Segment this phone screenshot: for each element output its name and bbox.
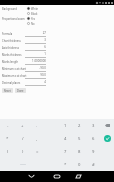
staticText: ,: [36, 136, 38, 142]
staticText: Background: [2, 7, 27, 11]
button[interactable]: =: [30, 145, 44, 158]
staticText: 7: [64, 149, 67, 155]
button[interactable]: Minimum x at chart: [2, 65, 114, 72]
button[interactable]: 1: [58, 119, 72, 132]
button[interactable]: 6: [86, 132, 100, 145]
staticText: Done: [17, 89, 24, 93]
staticText: 0: [78, 162, 81, 168]
staticText: 4: [25, 80, 46, 84]
button[interactable]: Maximum x at chart: [2, 72, 114, 79]
staticText: *: [6, 136, 9, 142]
button[interactable]: Yes: [27, 16, 36, 21]
staticText: Chart thickness: [2, 39, 25, 43]
staticText: 3: [25, 38, 46, 42]
staticText: (: [7, 149, 9, 155]
button[interactable]: 9: [86, 145, 100, 158]
button[interactable]: White: [27, 6, 39, 11]
button[interactable]: 7: [58, 145, 72, 158]
button[interactable]: 0: [72, 158, 86, 171]
staticText: 9: [92, 149, 95, 155]
staticText: Maximum x at chart: [2, 74, 25, 78]
staticText: 2: [78, 123, 81, 129]
staticText: White: [31, 7, 39, 11]
button[interactable]: 3: [86, 119, 100, 132]
staticText: 4: [64, 136, 67, 142]
staticText: Black: [31, 12, 38, 16]
staticText: 27: [25, 31, 46, 35]
button[interactable]: *: [0, 132, 15, 145]
button[interactable]: 5: [72, 132, 86, 145]
staticText: +: [21, 123, 24, 129]
staticText: 1: [25, 52, 46, 56]
staticText: Marks length: [2, 60, 25, 64]
staticText: 1.0000000: [25, 59, 46, 63]
button[interactable]: Recents: [74, 172, 83, 181]
button[interactable]: (: [0, 145, 15, 158]
button[interactable]: +: [15, 119, 30, 132]
button[interactable]: ): [15, 145, 30, 158]
staticText: Reset: [4, 89, 11, 93]
button[interactable]: Delete: [100, 119, 114, 132]
button[interactable]: #: [86, 158, 100, 171]
staticText: No: [31, 22, 35, 26]
button[interactable]: No: [27, 21, 35, 26]
button[interactable]: Chart thickness: [2, 37, 114, 44]
button[interactable]: 2: [72, 119, 86, 132]
staticText: -: [7, 123, 9, 129]
staticText: Minimum x at chart: [2, 67, 25, 71]
staticText: #: [92, 162, 95, 168]
button[interactable]: *: [58, 158, 72, 171]
button[interactable]: Decimal places: [2, 79, 114, 86]
button[interactable]: Reset: [2, 88, 13, 93]
staticText: *: [64, 162, 67, 168]
staticText: 6: [92, 136, 95, 142]
staticText: 1: [64, 123, 67, 129]
staticText: ): [22, 149, 24, 155]
staticText: Marks thickness: [2, 53, 25, 57]
staticText: 8: [78, 149, 81, 155]
button[interactable]: Back: [27, 172, 36, 181]
staticText: /: [22, 136, 24, 142]
staticText: =: [36, 149, 39, 155]
staticText: .: [36, 123, 38, 129]
button[interactable]: Done: [15, 88, 26, 93]
button[interactable]: Enter: [100, 132, 114, 145]
button[interactable]: Axis thickness: [2, 44, 114, 51]
button[interactable]: /: [15, 132, 30, 145]
staticText: 5: [78, 136, 81, 142]
button[interactable]: Marks thickness: [2, 51, 114, 58]
staticText: 6: [25, 45, 46, 49]
staticText: Decimal places: [2, 81, 25, 85]
button[interactable]: Marks length: [2, 58, 114, 65]
staticText: 3: [92, 123, 95, 129]
staticText: Proportional zoom: [2, 17, 27, 21]
button[interactable]: 8: [72, 145, 86, 158]
button[interactable]: Space: [15, 158, 30, 171]
staticText: Axis thickness: [2, 46, 25, 50]
staticText: 90.0: [25, 73, 46, 77]
button[interactable]: Formula: [2, 30, 114, 37]
button[interactable]: 4: [58, 132, 72, 145]
staticText: Yes: [31, 17, 36, 21]
button[interactable]: Black: [27, 11, 38, 16]
staticText: -90.0: [25, 66, 46, 70]
button[interactable]: Home: [52, 172, 61, 181]
staticText: Formula: [2, 32, 25, 36]
